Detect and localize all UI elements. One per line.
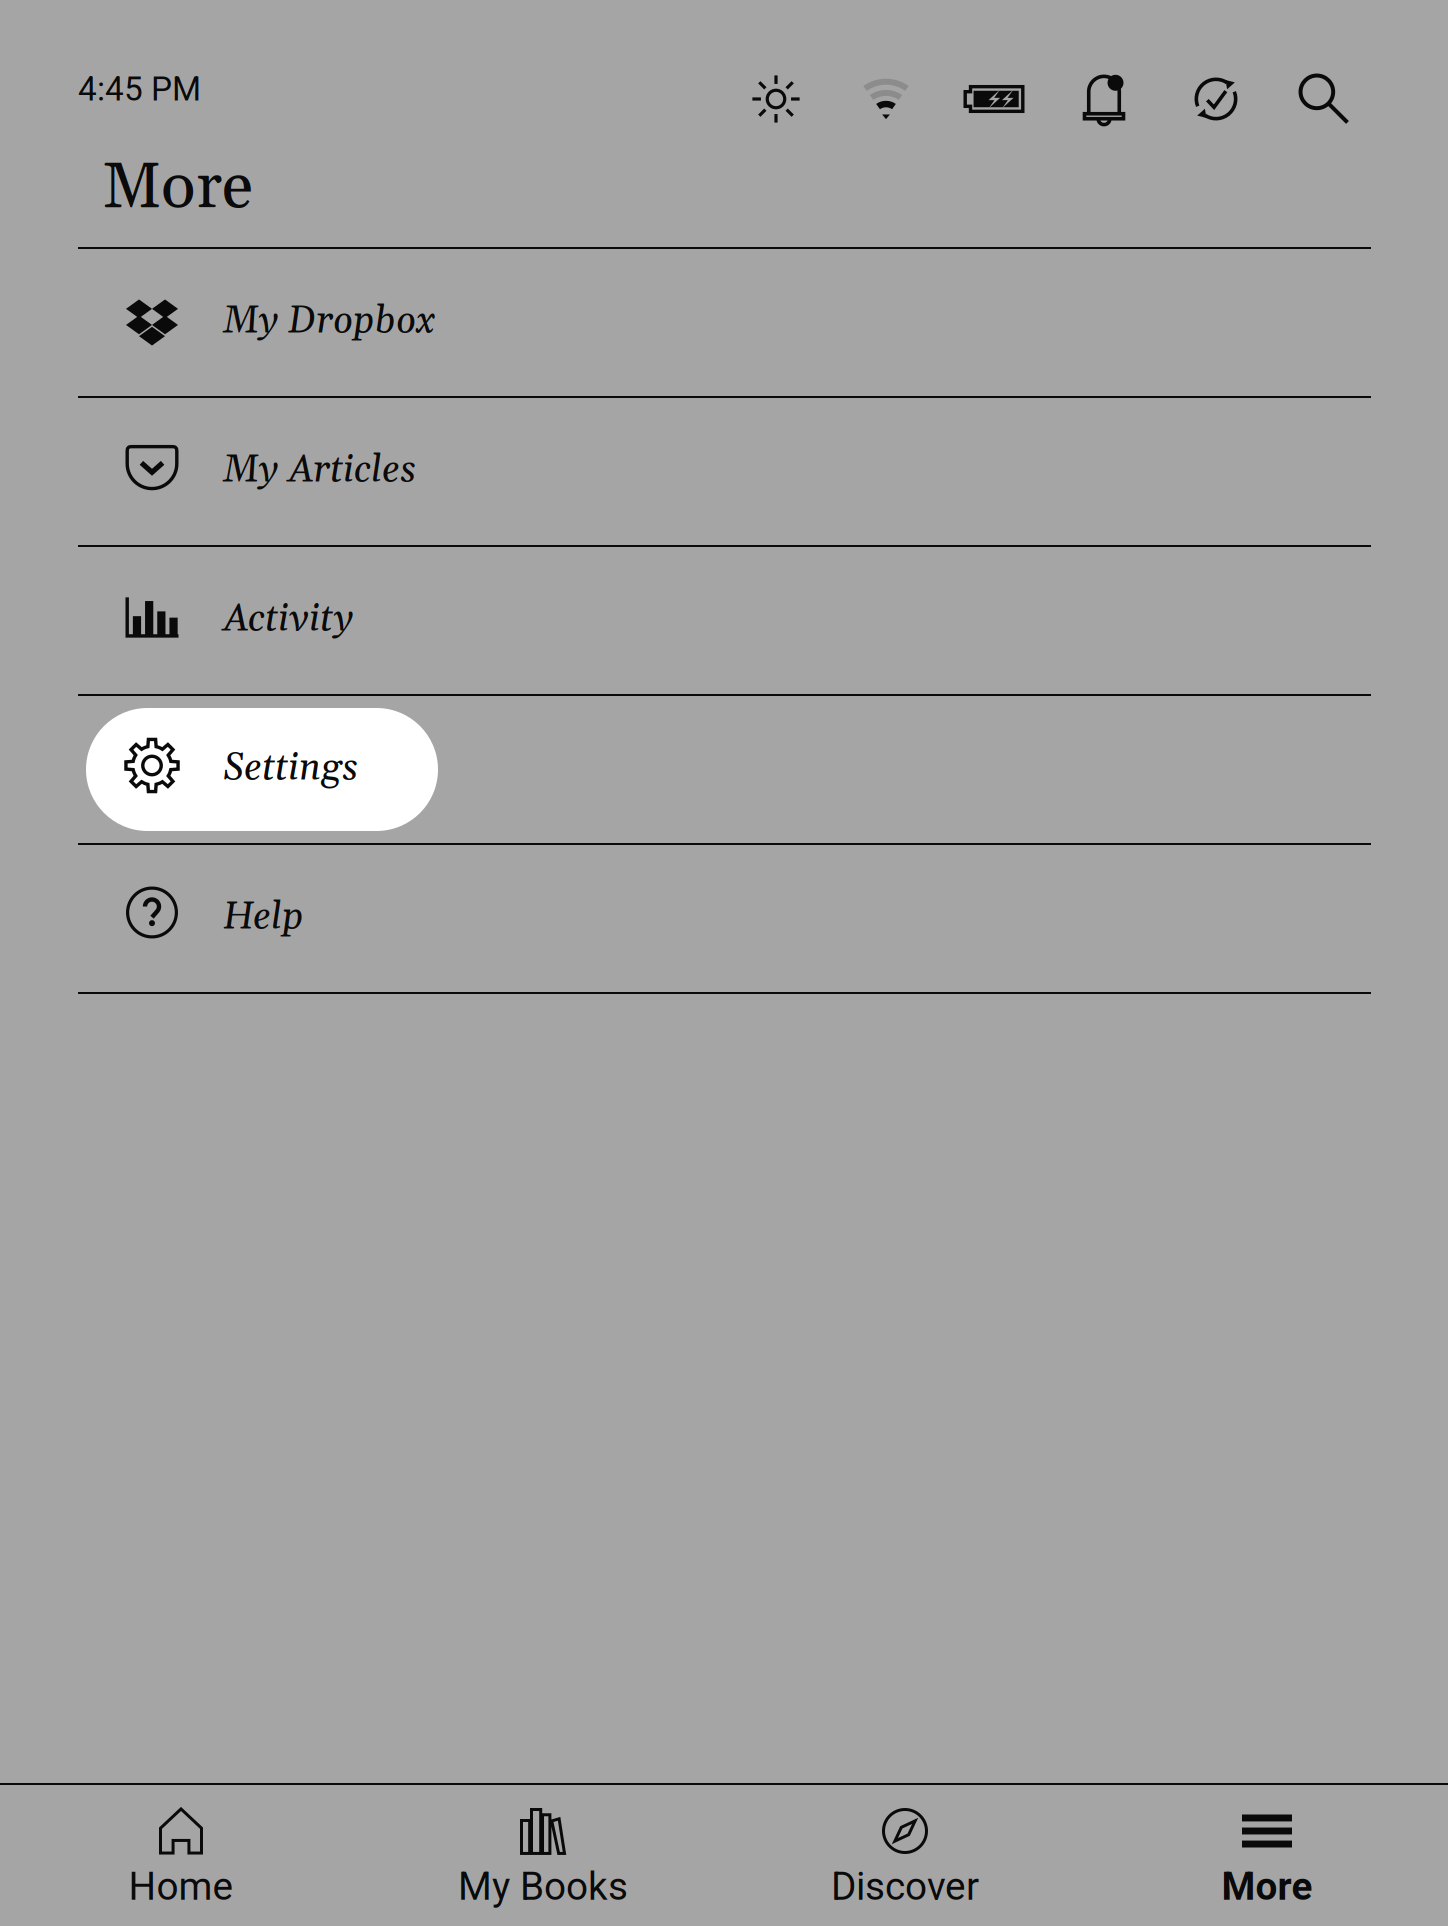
button[interactable]: My Articles xyxy=(0,398,1448,545)
button[interactable]: Settings xyxy=(0,696,1448,843)
button[interactable]: My Books xyxy=(362,1785,724,1926)
button[interactable]: My Dropbox xyxy=(0,249,1448,396)
button[interactable]: Notifications xyxy=(1080,73,1127,125)
staticText: Settings xyxy=(223,745,358,792)
button[interactable]: Help xyxy=(0,845,1448,992)
staticText: More xyxy=(102,147,253,229)
staticText: Help xyxy=(223,894,304,941)
staticText: My Articles xyxy=(223,447,416,494)
staticText: My Books xyxy=(458,1864,628,1909)
button[interactable]: Search xyxy=(1298,73,1349,124)
staticText: Home xyxy=(128,1864,233,1909)
staticText: Activity xyxy=(223,596,354,643)
button[interactable]: Discover xyxy=(724,1785,1086,1926)
button[interactable]: Activity xyxy=(0,547,1448,694)
staticText: More xyxy=(1221,1864,1312,1909)
button[interactable]: More xyxy=(1086,1785,1448,1926)
button[interactable]: Home xyxy=(0,1785,362,1926)
staticText: My Dropbox xyxy=(223,298,435,345)
button[interactable]: Sync xyxy=(1192,75,1240,123)
button[interactable]: Brightness xyxy=(751,74,801,124)
staticText: 4:45 PM xyxy=(78,69,201,109)
staticText: Discover xyxy=(831,1864,979,1909)
